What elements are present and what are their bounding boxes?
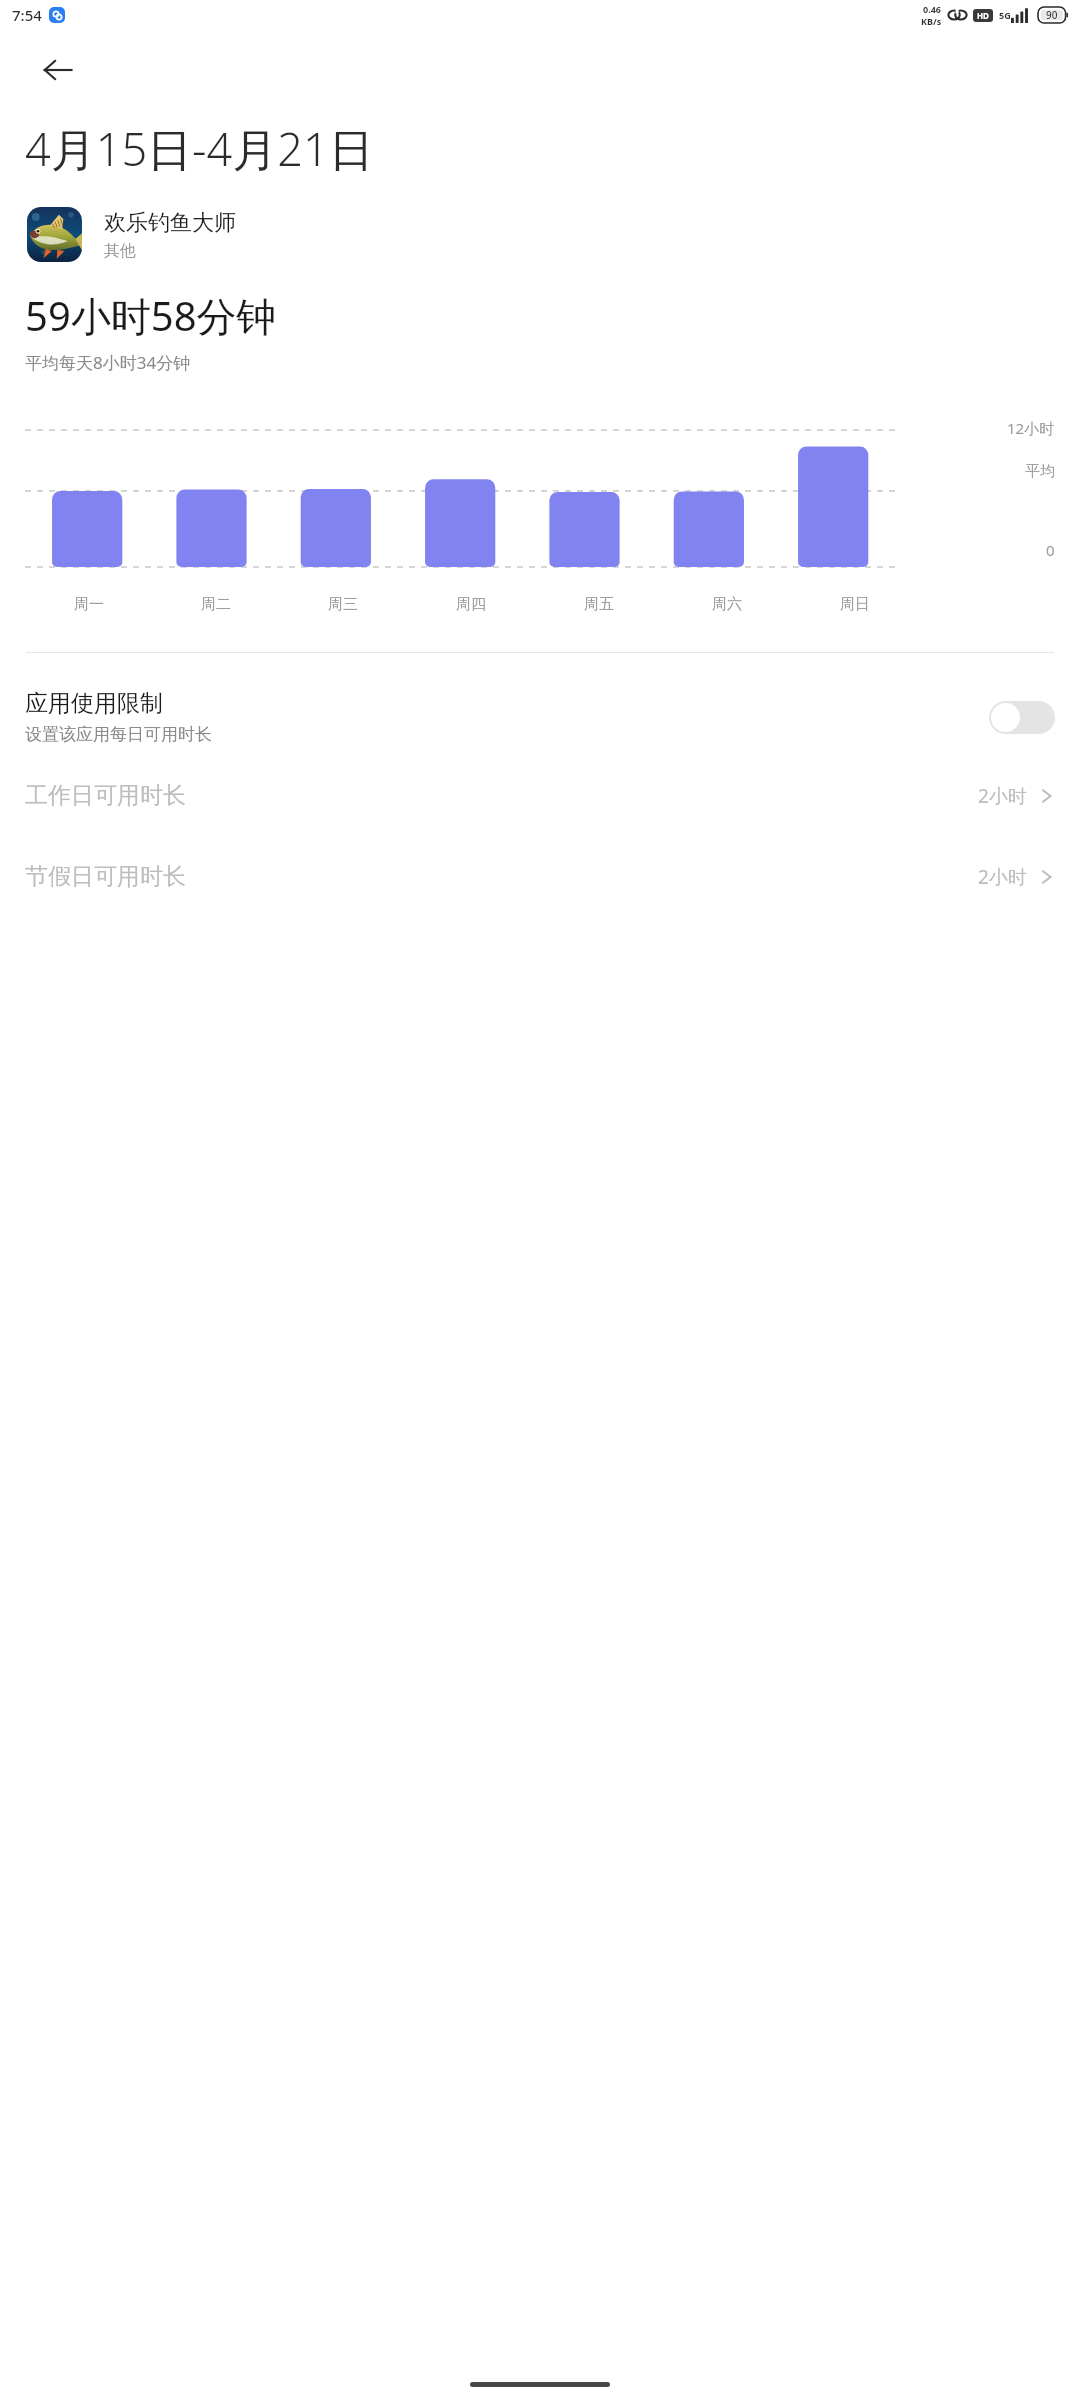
staticText: 平均每天8小时34分钟 [25, 351, 191, 374]
staticText: 4月15日-4月21日 [25, 118, 374, 179]
button[interactable]: Back [36, 48, 80, 92]
staticText: 周一 [74, 595, 104, 614]
staticText: 7:54 [12, 5, 42, 25]
staticText: 5G [999, 9, 1011, 21]
staticText: 周日 [840, 595, 870, 614]
staticText: 周三 [328, 595, 358, 614]
button[interactable]: 应用使用限制 [0, 683, 1080, 751]
staticText: 平均 [1025, 462, 1055, 481]
staticText: 59小时58分钟 [25, 288, 277, 343]
staticText: 周五 [584, 595, 614, 614]
button[interactable]: 工作日可用时长 [0, 765, 1080, 826]
staticText: 周六 [712, 595, 742, 614]
staticText: 2小时 [978, 783, 1027, 809]
staticText: 周二 [201, 595, 231, 614]
button[interactable]: 欢乐钓鱼大师 [0, 203, 1080, 266]
staticText: 0.46 [923, 3, 941, 15]
staticText: KB/s [921, 15, 942, 27]
staticText: 设置该应用每日可用时长 [25, 724, 212, 745]
staticText: 欢乐钓鱼大师 [104, 209, 236, 237]
button[interactable]: 应用使用限制 开关 [989, 701, 1055, 734]
staticText: 2小时 [978, 864, 1027, 890]
staticText: HD [977, 10, 989, 21]
button[interactable]: 节假日可用时长 [0, 846, 1080, 907]
staticText: 12小时 [1007, 418, 1055, 438]
staticText: 工作日可用时长 [25, 781, 978, 810]
staticText: 应用使用限制 [25, 689, 163, 718]
staticText: 0 [1046, 540, 1055, 560]
staticText: 其他 [104, 241, 136, 261]
staticText: 周四 [456, 595, 486, 614]
staticText: 90 [1046, 8, 1058, 22]
staticText: 节假日可用时长 [25, 862, 978, 891]
